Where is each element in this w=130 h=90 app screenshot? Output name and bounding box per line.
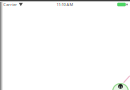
staticText: 11:10 AM — [56, 2, 73, 7]
staticText: Carrier — [3, 2, 17, 7]
